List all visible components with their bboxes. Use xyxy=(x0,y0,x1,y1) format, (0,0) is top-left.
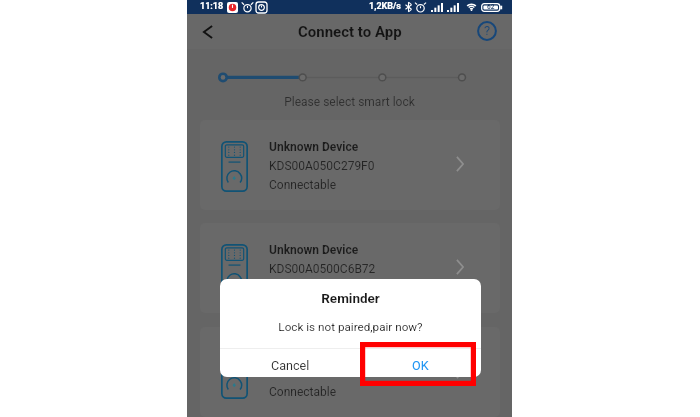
button[interactable]: OK xyxy=(350,349,481,377)
button[interactable]: Back xyxy=(193,17,223,47)
button[interactable]: Unknown Device xyxy=(200,223,500,313)
staticText: Unknown Device xyxy=(269,140,359,154)
staticText: Cancel xyxy=(271,358,310,373)
button[interactable]: Unknown Device xyxy=(200,327,500,417)
staticText: KDS00A0500C6B72 xyxy=(269,262,376,276)
staticText: Unknown Device xyxy=(269,243,359,257)
staticText: 1,2KB/s xyxy=(369,1,401,12)
staticText: ? xyxy=(484,23,491,38)
staticText: Reminder xyxy=(220,290,481,306)
staticText: Please select smart lock xyxy=(187,95,512,109)
staticText: 11:18 xyxy=(200,1,224,12)
staticText: Connectable xyxy=(269,281,337,295)
staticText: KDS00A050C279F0 xyxy=(269,159,375,173)
button[interactable]: Help xyxy=(474,18,500,44)
staticText: Unknown Device xyxy=(269,347,359,361)
staticText: OK xyxy=(412,358,429,373)
staticText: 62 xyxy=(487,3,495,11)
button[interactable]: Unknown Device xyxy=(200,120,500,210)
staticText: Lock is not paired,pair now? xyxy=(220,320,481,334)
button[interactable]: Cancel xyxy=(220,349,350,377)
staticText: Connect to App xyxy=(298,23,402,41)
staticText: Connectable xyxy=(269,178,337,192)
staticText: Connectable xyxy=(269,385,337,399)
staticText: KDS00A05009A3C1 xyxy=(269,366,376,380)
